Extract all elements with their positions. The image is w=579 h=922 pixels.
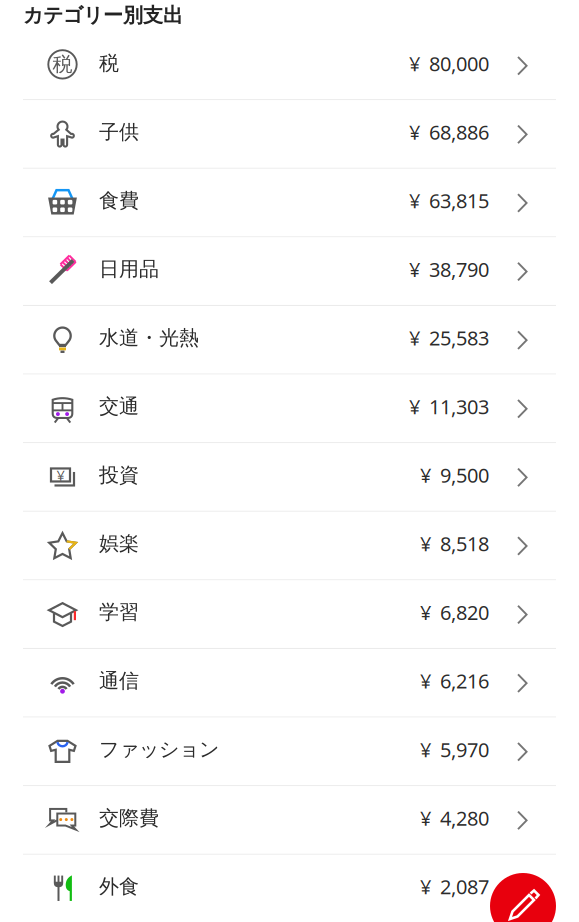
staticText: ¥ <box>420 530 431 557</box>
button[interactable]: 税 <box>0 32 579 100</box>
staticText: カテゴリー別支出 <box>23 3 183 28</box>
staticText: ¥ <box>409 50 420 77</box>
button[interactable]: 子供 <box>0 100 579 169</box>
staticText: 63,815 <box>429 187 489 214</box>
staticText: 日用品 <box>99 257 159 281</box>
staticText: 80,000 <box>429 50 489 77</box>
staticText: 交通 <box>99 394 139 419</box>
staticText: ¥ <box>420 736 431 763</box>
button[interactable]: ¥ <box>0 443 579 512</box>
staticText: 11,303 <box>429 393 489 420</box>
staticText: 5,970 <box>440 736 489 763</box>
button[interactable]: 食費 <box>0 169 579 237</box>
staticText: 4,280 <box>440 805 489 831</box>
button[interactable]: 通信 <box>0 649 579 718</box>
staticText: 税 <box>99 51 119 76</box>
button[interactable]: 交通 <box>0 375 579 443</box>
staticText: 2,087 <box>440 873 489 900</box>
staticText: 外食 <box>99 874 139 899</box>
button[interactable]: 交際費 <box>0 786 579 855</box>
staticText: ¥ <box>409 324 420 351</box>
button[interactable]: 娯楽 <box>0 512 579 580</box>
staticText: ファッション <box>99 737 219 762</box>
staticText: 水道・光熱 <box>99 325 199 350</box>
button[interactable]: 水道・光熱 <box>0 306 579 375</box>
staticText: ¥ <box>409 187 420 214</box>
staticText: 子供 <box>99 120 139 144</box>
staticText: ¥ <box>409 393 420 420</box>
staticText: 交際費 <box>99 806 159 830</box>
staticText: ¥ <box>420 599 431 625</box>
staticText: 通信 <box>99 668 139 693</box>
staticText: ¥ <box>420 805 431 831</box>
staticText: 6,216 <box>440 667 489 694</box>
staticText: ¥ <box>420 873 431 900</box>
button[interactable]: 学習 <box>0 580 579 649</box>
staticText: 25,583 <box>429 324 489 351</box>
staticText: 税 <box>52 52 72 77</box>
staticText: 6,820 <box>440 599 489 625</box>
button[interactable]: ファッション <box>0 718 579 786</box>
staticText: 投資 <box>99 463 139 487</box>
staticText: 食費 <box>99 188 139 213</box>
staticText: 9,500 <box>440 462 489 488</box>
staticText: 38,790 <box>429 256 489 282</box>
button[interactable]: 記録を追加 <box>490 873 556 922</box>
staticText: 娯楽 <box>99 531 139 556</box>
button[interactable]: 日用品 <box>0 237 579 306</box>
staticText: 68,886 <box>429 119 489 145</box>
staticText: ¥ <box>420 462 431 488</box>
staticText: ¥ <box>56 465 64 485</box>
staticText: 8,518 <box>440 530 489 557</box>
staticText: 学習 <box>99 600 139 624</box>
button[interactable]: 外食 <box>0 855 579 922</box>
staticText: ¥ <box>409 256 420 282</box>
staticText: ¥ <box>420 667 431 694</box>
staticText: ¥ <box>409 119 420 145</box>
